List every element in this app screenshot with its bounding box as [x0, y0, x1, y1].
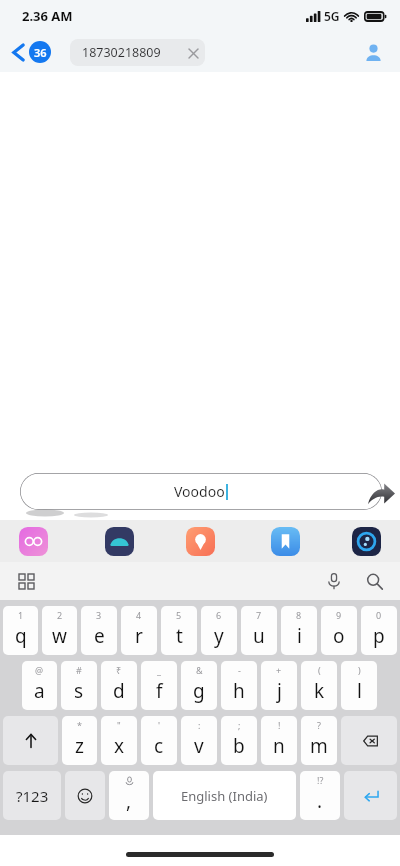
staticText: ;	[238, 719, 241, 731]
staticText: !	[278, 719, 281, 731]
button[interactable]: Suggestions	[186, 527, 215, 556]
staticText: o	[333, 623, 345, 649]
button[interactable]: 8	[281, 606, 317, 655]
staticText: a	[34, 678, 45, 704]
staticText: 5G	[324, 8, 340, 24]
staticText: g	[193, 678, 205, 704]
staticText: .	[317, 788, 323, 814]
staticText: f	[156, 678, 163, 704]
button[interactable]: Send	[363, 476, 399, 512]
button[interactable]: 9	[321, 606, 357, 655]
staticText: z	[75, 733, 84, 759]
button[interactable]: )	[341, 661, 377, 710]
staticText: Voodoo	[174, 482, 225, 501]
staticText: ?123	[16, 786, 49, 806]
button[interactable]: (	[301, 661, 337, 710]
button[interactable]: Cloud clipboard	[105, 527, 134, 556]
button[interactable]: Shift	[3, 716, 58, 765]
button[interactable]: Keyboard menu	[10, 565, 42, 597]
staticText: (	[318, 664, 321, 676]
staticText: 1	[18, 609, 24, 621]
staticText: 4	[136, 609, 142, 621]
staticText: ?	[317, 719, 321, 731]
staticText: 0	[376, 609, 382, 621]
staticText: 5	[176, 609, 182, 621]
button[interactable]: +	[261, 661, 297, 710]
button[interactable]: @	[22, 661, 57, 710]
staticText: +	[276, 664, 282, 676]
staticText: 2.36 AM	[22, 7, 73, 25]
button[interactable]: Search	[358, 565, 390, 597]
staticText: "	[117, 719, 121, 731]
button[interactable]: ;	[221, 716, 257, 765]
staticText: v	[194, 733, 204, 759]
staticText: c	[154, 733, 164, 759]
button[interactable]: _	[141, 661, 177, 710]
staticText: English (India)	[181, 787, 268, 805]
button[interactable]: -	[221, 661, 257, 710]
staticText: !?	[317, 774, 324, 786]
button[interactable]: !?	[300, 771, 340, 820]
button[interactable]: Contacts	[359, 38, 387, 66]
button[interactable]: Back, 36 unread	[8, 38, 55, 66]
staticText: e	[94, 623, 105, 649]
button[interactable]: Backspace	[341, 716, 397, 765]
button[interactable]: Enter	[344, 771, 397, 820]
staticText: 6	[216, 609, 222, 621]
staticText: -	[238, 664, 241, 676]
button[interactable]: '	[141, 716, 177, 765]
staticText: 3	[96, 609, 102, 621]
staticText: u	[253, 623, 265, 649]
staticText: k	[314, 678, 325, 704]
staticText: y	[214, 623, 224, 649]
button[interactable]: 6	[201, 606, 237, 655]
staticText: 9	[336, 609, 342, 621]
staticText: q	[15, 623, 27, 649]
staticText: #	[76, 664, 82, 676]
staticText: h	[233, 678, 245, 704]
button[interactable]: &	[181, 661, 217, 710]
button[interactable]: 18730218809	[70, 39, 205, 66]
staticText: 8	[296, 609, 302, 621]
button[interactable]: 1	[3, 606, 38, 655]
staticText: ,	[126, 788, 132, 814]
button[interactable]: 3	[81, 606, 117, 655]
button[interactable]: Assistant	[352, 527, 381, 556]
staticText: n	[273, 733, 285, 759]
button[interactable]: Voodoo	[20, 473, 382, 510]
button[interactable]: 2	[42, 606, 77, 655]
button[interactable]: ,	[109, 771, 149, 820]
button[interactable]: ?	[301, 716, 337, 765]
button[interactable]: ₹	[101, 661, 137, 710]
button[interactable]: #	[61, 661, 97, 710]
staticText: j	[277, 678, 282, 704]
staticText: x	[114, 733, 125, 759]
staticText: s	[74, 678, 84, 704]
staticText: 18730218809	[82, 44, 181, 61]
button[interactable]: ?123	[3, 771, 61, 820]
staticText: m	[310, 733, 328, 759]
staticText: d	[113, 678, 125, 704]
staticText: @	[35, 664, 44, 676]
button[interactable]: Saved	[271, 527, 300, 556]
staticText: 2	[57, 609, 63, 621]
button[interactable]: Voice input	[318, 565, 350, 597]
staticText: )	[358, 664, 361, 676]
staticText: 7	[256, 609, 262, 621]
staticText: r	[135, 623, 143, 649]
button[interactable]: 4	[121, 606, 157, 655]
button[interactable]: Emoji	[65, 771, 105, 820]
button[interactable]: "	[101, 716, 137, 765]
button[interactable]: :	[181, 716, 217, 765]
button[interactable]: Emoji suggestions	[19, 527, 48, 556]
staticText: i	[297, 623, 302, 649]
button[interactable]: Clear	[181, 41, 205, 65]
staticText: :	[198, 719, 201, 731]
button[interactable]: !	[261, 716, 297, 765]
staticText: b	[233, 733, 245, 759]
button[interactable]: 5	[161, 606, 197, 655]
button[interactable]: 0	[361, 606, 397, 655]
button[interactable]: *	[62, 716, 97, 765]
button[interactable]: 7	[241, 606, 277, 655]
button[interactable]: English (India)	[153, 771, 296, 820]
